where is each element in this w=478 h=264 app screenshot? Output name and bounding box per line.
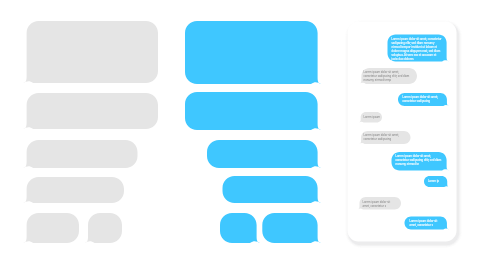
button[interactable]: Sent bubble 6 bbox=[263, 213, 320, 243]
button[interactable]: Message bubble 2 bbox=[24, 93, 158, 129]
button[interactable]: Sent bubble 2 bbox=[185, 92, 320, 130]
button[interactable]: Chat message 3 bbox=[398, 93, 449, 106]
button[interactable]: Chat message 6 bbox=[392, 152, 450, 171]
button[interactable]: Chat message 7 bbox=[424, 176, 449, 187]
button[interactable]: Sent bubble 4 bbox=[223, 176, 320, 203]
button[interactable]: Chat message 5 bbox=[359, 131, 411, 144]
button[interactable]: Message bubble 6 bbox=[85, 213, 122, 243]
button[interactable]: Sent bubble 1 bbox=[185, 21, 320, 84]
button[interactable]: Chat message 4 bbox=[359, 112, 382, 123]
button[interactable]: Message bubble 3 bbox=[24, 140, 137, 168]
button[interactable]: Chat message 9 bbox=[405, 217, 450, 230]
button[interactable]: Chat message 2 bbox=[359, 68, 417, 84]
button[interactable]: Message bubble 5 bbox=[24, 213, 80, 243]
button[interactable]: Chat message 8 bbox=[358, 197, 402, 210]
button[interactable]: Sent bubble 5 bbox=[220, 213, 258, 243]
button[interactable]: Message bubble 1 bbox=[24, 21, 158, 83]
button[interactable]: Sent bubble 3 bbox=[207, 140, 320, 168]
button[interactable]: Chat message 1 bbox=[388, 35, 450, 62]
button[interactable]: Message bubble 4 bbox=[24, 177, 124, 203]
